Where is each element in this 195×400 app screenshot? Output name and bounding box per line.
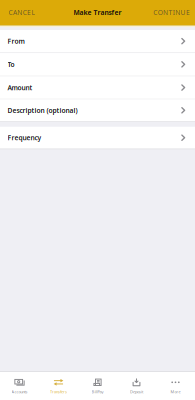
staticText: From [8, 37, 25, 46]
staticText: Frequency [8, 133, 42, 142]
button[interactable]: More [156, 372, 195, 400]
staticText: Accounts [11, 389, 27, 394]
staticText: Transfers [50, 389, 67, 394]
button[interactable]: Deposit [117, 372, 156, 400]
button[interactable]: BillPay [78, 372, 117, 400]
staticText: Deposit [130, 389, 143, 394]
button[interactable]: CONTINUE [147, 2, 195, 23]
button[interactable]: To [0, 53, 195, 76]
staticText: Description (optional) [8, 106, 78, 115]
button[interactable]: Accounts [0, 372, 39, 400]
staticText: More [170, 389, 180, 394]
staticText: BillPay [91, 389, 103, 394]
staticText: Make Transfer [73, 8, 121, 17]
button[interactable]: Transfers [39, 372, 78, 400]
staticText: To [8, 60, 15, 69]
button[interactable]: CANCEL [0, 2, 40, 23]
button[interactable]: Description (optional) [0, 99, 195, 121]
staticText: CONTINUE [153, 8, 190, 17]
button[interactable]: From [0, 30, 195, 53]
button[interactable]: Frequency [0, 127, 195, 149]
staticText: CANCEL [8, 8, 34, 17]
staticText: Amount [8, 83, 33, 92]
button[interactable]: Amount [0, 76, 195, 99]
